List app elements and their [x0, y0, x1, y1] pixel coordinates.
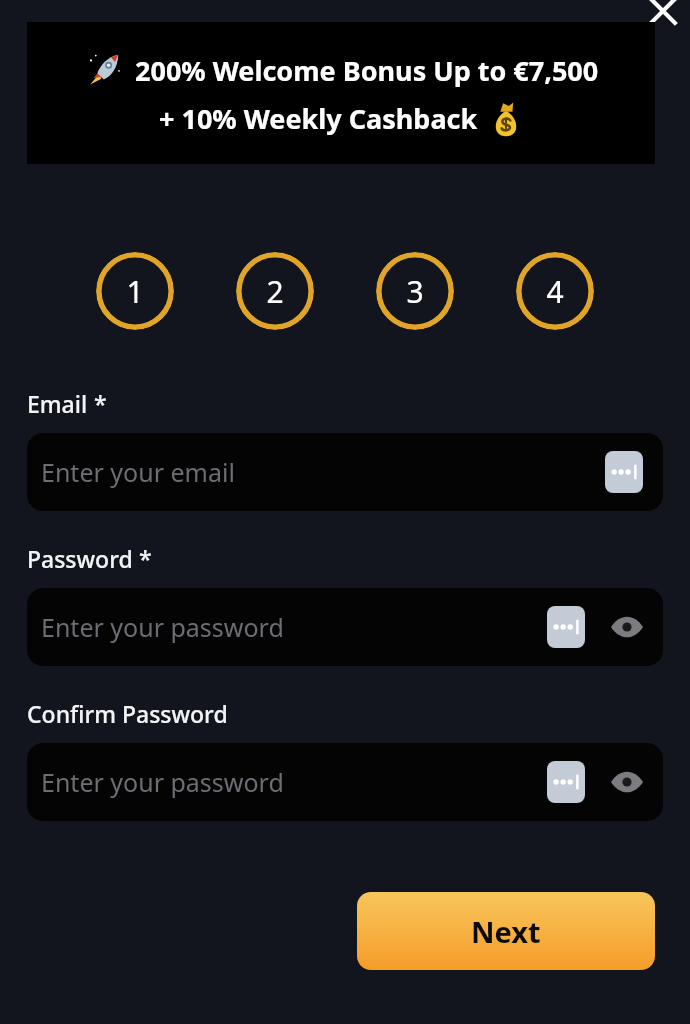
- button[interactable]: Enter your password: [27, 588, 663, 666]
- button[interactable]: Autofill: [605, 451, 643, 493]
- button[interactable]: Show password: [606, 761, 648, 803]
- button[interactable]: Autofill: [547, 606, 585, 648]
- staticText: 200% Welcome Bonus Up to €7,500: [135, 52, 599, 89]
- staticText: 1: [126, 271, 144, 312]
- button[interactable]: 200% Welcome Bonus Up to €7,500: [27, 22, 655, 164]
- staticText: Password: [27, 543, 133, 574]
- button[interactable]: Close: [636, 0, 690, 38]
- button[interactable]: 3: [376, 252, 454, 330]
- staticText: 2: [266, 271, 284, 312]
- button[interactable]: 4: [516, 252, 594, 330]
- staticText: 3: [406, 271, 424, 312]
- button[interactable]: Next: [357, 892, 655, 970]
- staticText: 4: [546, 271, 564, 312]
- staticText: Enter your email: [41, 455, 235, 489]
- staticText: Email: [27, 388, 88, 419]
- staticText: Confirm Password: [27, 698, 228, 729]
- button[interactable]: Autofill: [547, 761, 585, 803]
- staticText: *: [139, 543, 152, 574]
- staticText: + 10% Weekly Cashback: [159, 100, 478, 137]
- button[interactable]: Show password: [606, 606, 648, 648]
- staticText: Enter your password: [41, 765, 284, 799]
- button[interactable]: Enter your password: [27, 743, 663, 821]
- button[interactable]: 2: [236, 252, 314, 330]
- staticText: Next: [471, 912, 541, 951]
- button[interactable]: Enter your email: [27, 433, 663, 511]
- button[interactable]: 1: [96, 252, 174, 330]
- staticText: *: [94, 388, 107, 419]
- staticText: Enter your password: [41, 610, 284, 644]
